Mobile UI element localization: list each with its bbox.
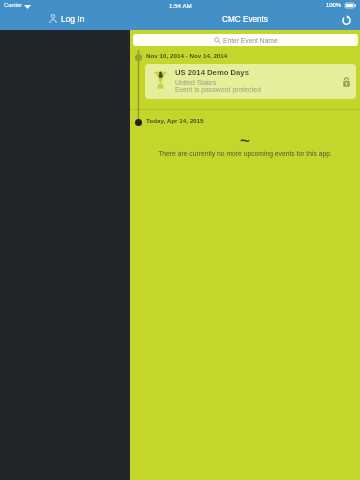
- staticText: CMC Events: [222, 15, 268, 24]
- button[interactable]: Enter Event Name: [133, 34, 358, 46]
- staticText: 1:54 AM: [169, 2, 192, 9]
- staticText: Enter Event Name: [223, 37, 278, 44]
- staticText: Today, Apr 14, 2015: [146, 117, 204, 124]
- staticText: Log In: [61, 14, 85, 23]
- staticText: United States: [175, 79, 217, 87]
- staticText: 100%: [326, 2, 342, 9]
- button[interactable]: US 2014 Demo Days: [145, 64, 356, 99]
- staticText: Event is password protected: [175, 86, 261, 94]
- button[interactable]: Refresh: [341, 15, 352, 26]
- button[interactable]: Log In: [49, 14, 85, 23]
- staticText: There are currently no more upcoming eve…: [130, 150, 360, 158]
- staticText: ~: [130, 131, 360, 150]
- staticText: Carrier: [4, 2, 22, 9]
- staticText: Nov 10, 2014 - Nov 14, 2014: [146, 52, 228, 59]
- staticText: US 2014 Demo Days: [175, 68, 249, 77]
